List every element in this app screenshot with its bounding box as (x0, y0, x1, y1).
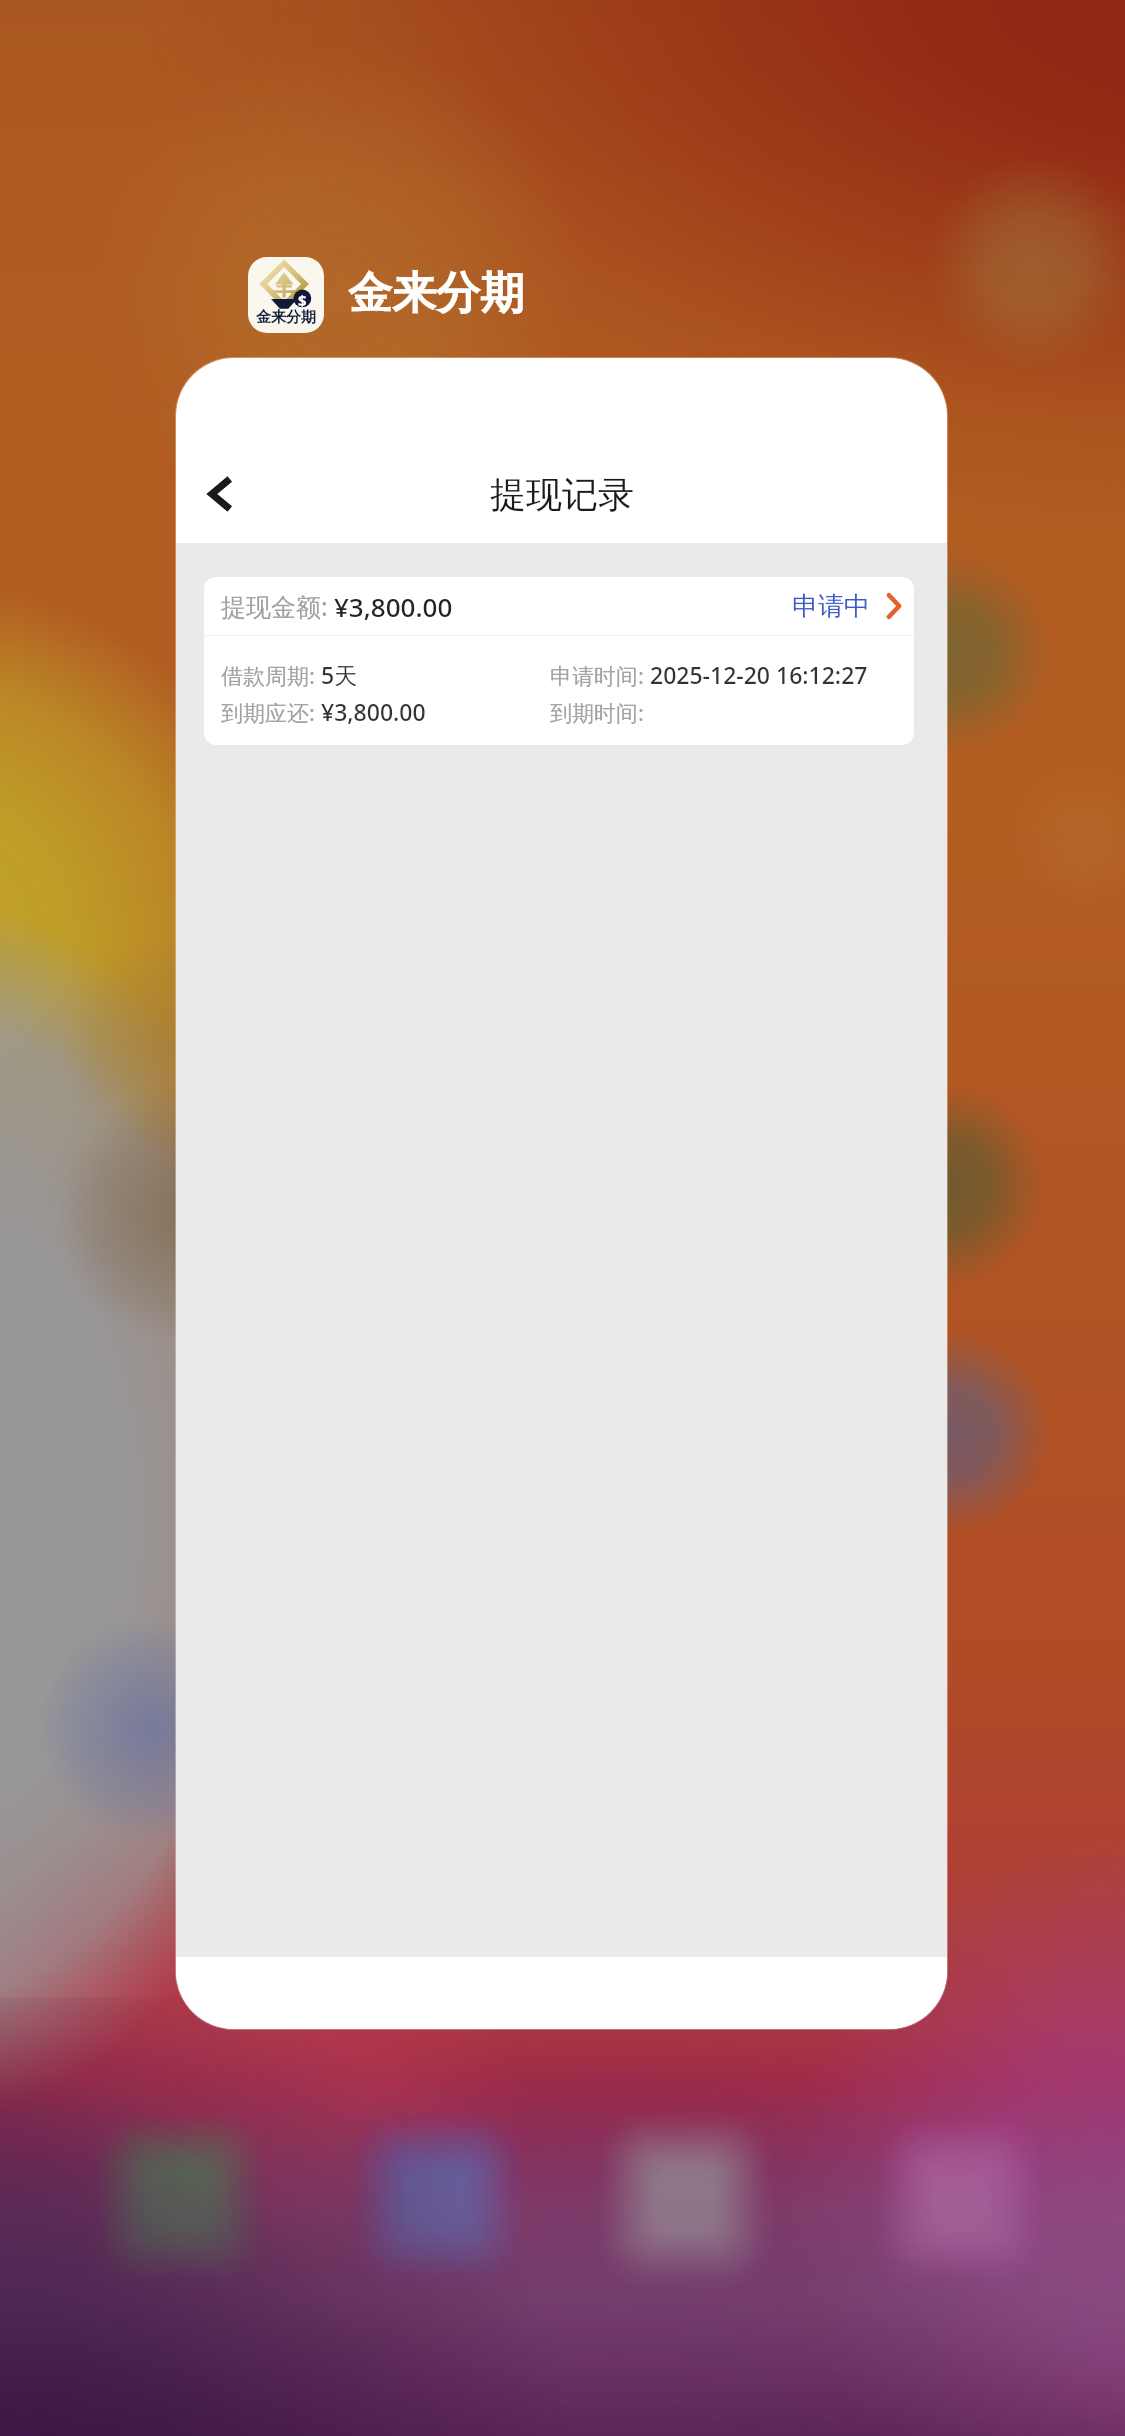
staticText: 2025-12-20 16:12:27 (650, 659, 868, 690)
staticText: 到期时间: (550, 697, 644, 727)
staticText: 金来分期 (256, 308, 316, 327)
staticText: 借款周期: (221, 660, 315, 690)
staticText: 申请时间: (550, 660, 644, 690)
staticText: 到期应还: (221, 697, 315, 727)
staticText: 申请中 (792, 590, 870, 623)
staticText: 5天 (321, 659, 358, 690)
button[interactable]: Back (176, 449, 266, 539)
staticText: 金来分期 (348, 266, 524, 321)
staticText: 提现记录 (490, 472, 634, 517)
staticText: $ (298, 290, 307, 310)
staticText: 提现金额: (221, 589, 328, 623)
staticText: ¥3,800.00 (321, 696, 426, 727)
button[interactable]: 提现金额: (204, 577, 914, 745)
staticText: ¥3,800.00 (334, 589, 453, 624)
